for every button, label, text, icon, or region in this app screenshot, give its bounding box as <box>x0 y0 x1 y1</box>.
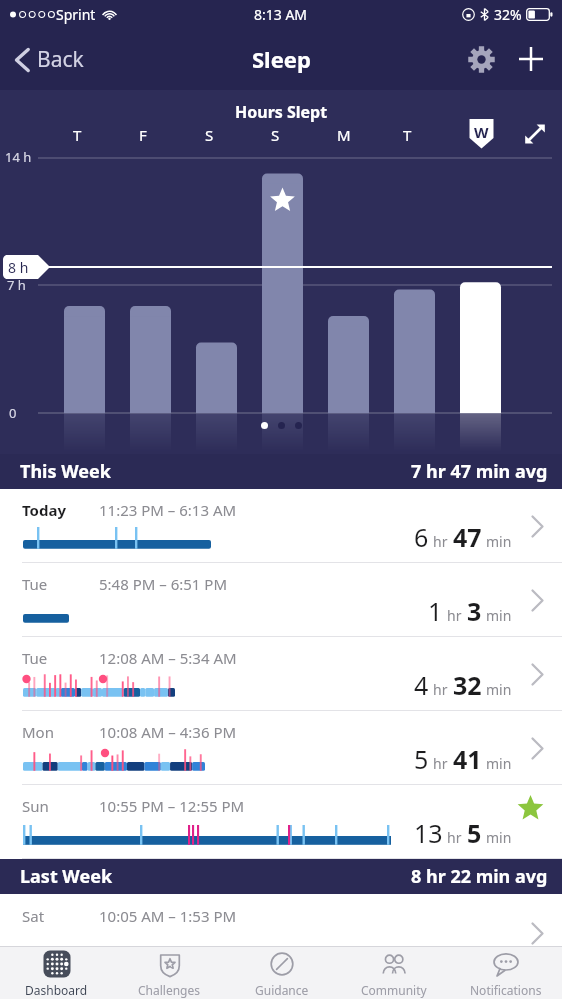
staticText: 11:23 PM – 6:13 AM <box>99 500 237 520</box>
staticText: S <box>205 125 214 145</box>
staticText: T <box>403 125 412 145</box>
staticText: 32% <box>494 5 522 24</box>
staticText: W <box>474 122 489 142</box>
staticText: 7 hr 47 min avg <box>411 459 548 484</box>
button[interactable]: Mon <box>0 711 562 785</box>
staticText: hr <box>433 532 448 551</box>
staticText: 8:13 AM <box>254 5 308 24</box>
staticText: hr <box>447 606 462 625</box>
button[interactable]: Last Week <box>0 859 562 894</box>
button[interactable]: Challenges <box>113 947 226 999</box>
button[interactable]: Community <box>338 947 450 999</box>
staticText: Tue <box>22 574 48 594</box>
button[interactable]: Dashboard <box>0 947 113 999</box>
staticText: 14 h <box>5 148 32 166</box>
staticText: Sun <box>22 796 49 816</box>
staticText: Dashboard <box>25 982 88 998</box>
staticText: 7 h <box>7 276 26 294</box>
staticText: 10:08 AM – 4:36 PM <box>99 722 237 742</box>
staticText: 5 <box>467 816 482 850</box>
staticText: Today <box>22 500 67 520</box>
staticText: Tue <box>22 648 48 668</box>
staticText: min <box>486 606 512 625</box>
staticText: 41 <box>453 742 482 776</box>
staticText: Back <box>37 45 84 74</box>
button[interactable]: Settings <box>462 40 500 78</box>
staticText: min <box>486 532 512 551</box>
staticText: 3 <box>467 594 482 628</box>
staticText: 6 <box>414 520 429 554</box>
staticText: Last Week <box>20 864 113 889</box>
button[interactable]: Wednesday selected <box>467 117 496 150</box>
staticText: Sleep <box>252 44 311 74</box>
staticText: S <box>271 125 280 145</box>
staticText: Community <box>361 982 427 998</box>
staticText: Mon <box>22 722 54 742</box>
button[interactable]: Sat <box>0 894 562 946</box>
staticText: 8 h <box>8 258 29 277</box>
staticText: min <box>486 754 512 773</box>
staticText: T <box>73 125 82 145</box>
button[interactable]: Back <box>10 38 89 81</box>
staticText: Sat <box>22 906 45 926</box>
button[interactable]: Today <box>0 489 562 563</box>
button[interactable]: Expand chart <box>518 117 552 151</box>
staticText: hr <box>433 754 448 773</box>
staticText: Notifications <box>470 982 542 998</box>
staticText: 10:55 PM – 12:55 PM <box>99 796 245 816</box>
staticText: 32 <box>453 668 482 702</box>
staticText: F <box>139 125 147 145</box>
staticText: hr <box>447 828 462 847</box>
staticText: 13 <box>414 816 443 850</box>
button[interactable]: Sun <box>0 785 562 859</box>
staticText: 10:05 AM – 1:53 PM <box>99 906 237 926</box>
staticText: 4 <box>414 668 429 702</box>
staticText: hr <box>433 680 448 699</box>
button[interactable]: Guidance <box>226 947 338 999</box>
staticText: Challenges <box>138 982 201 998</box>
staticText: 1 <box>428 594 443 628</box>
staticText: min <box>486 680 512 699</box>
staticText: M <box>337 125 351 145</box>
staticText: 0 <box>9 404 17 422</box>
staticText: Guidance <box>255 982 309 998</box>
staticText: 8 hr 22 min avg <box>411 864 548 889</box>
staticText: 12:08 AM – 5:34 AM <box>99 648 237 668</box>
staticText: 5:48 PM – 6:51 PM <box>99 574 227 594</box>
button[interactable]: Notifications <box>450 947 562 999</box>
staticText: 5 <box>414 742 429 776</box>
button[interactable]: This Week <box>0 454 562 489</box>
staticText: 47 <box>453 520 482 554</box>
staticText: Hours Slept <box>235 101 328 123</box>
staticText: min <box>486 828 512 847</box>
button[interactable]: Tue <box>0 563 562 637</box>
staticText: Sprint <box>56 5 96 24</box>
button[interactable]: Tue <box>0 637 562 711</box>
staticText: This Week <box>20 459 111 484</box>
button[interactable]: Add sleep log <box>512 40 550 78</box>
